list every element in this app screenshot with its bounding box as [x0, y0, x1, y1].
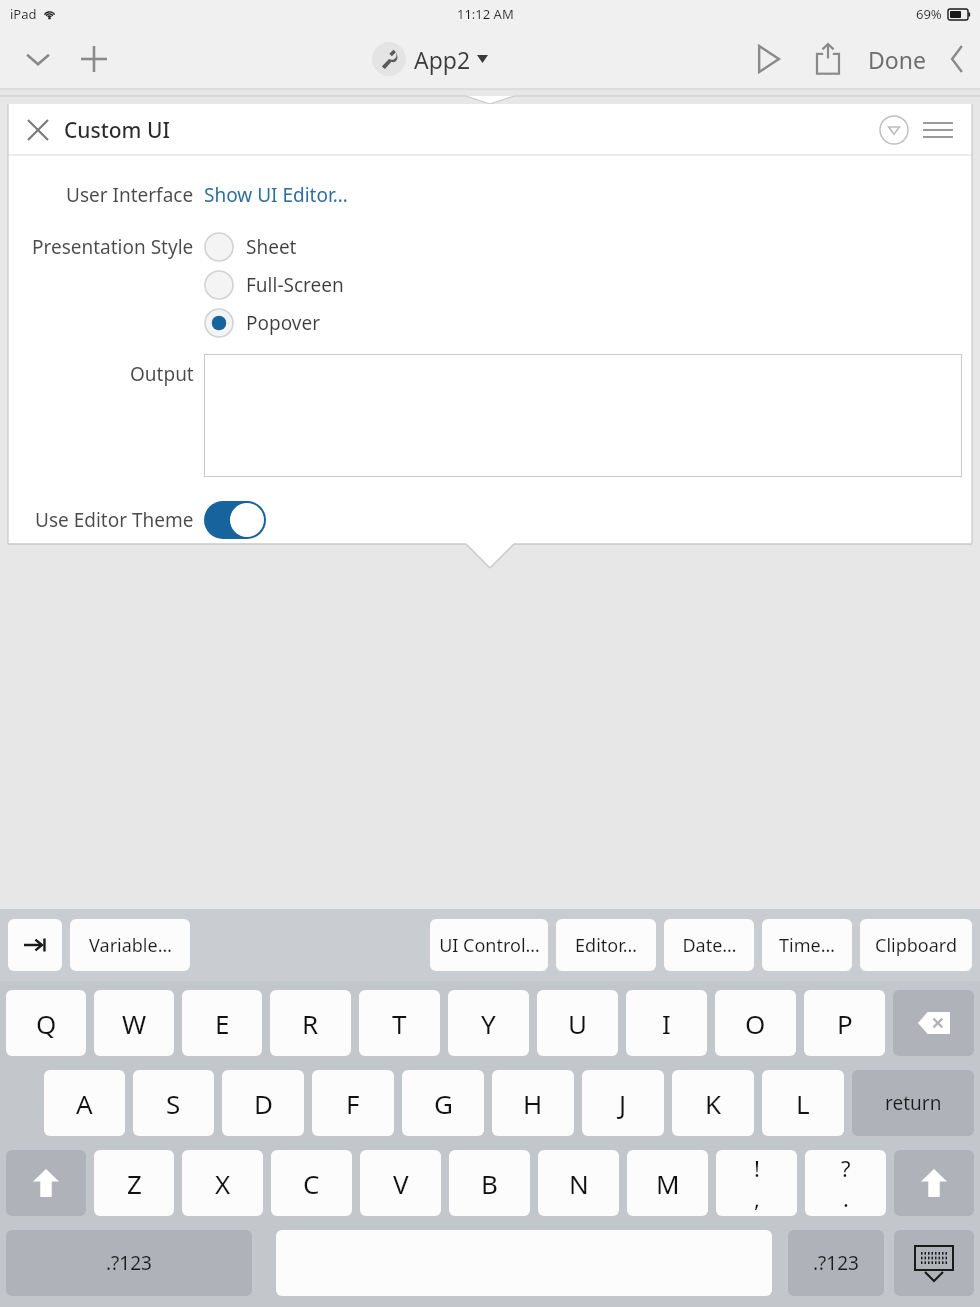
button[interactable]: Shift — [894, 1150, 974, 1216]
staticText: C — [303, 1166, 320, 1201]
staticText: .?123 — [813, 1250, 859, 1276]
staticText: iPad — [10, 5, 37, 23]
button[interactable]: .?123 — [788, 1230, 884, 1296]
button[interactable]: Back — [934, 36, 980, 82]
button[interactable]: U — [537, 990, 618, 1056]
staticText: A — [76, 1086, 93, 1121]
button[interactable]: T — [359, 990, 440, 1056]
button[interactable]: Date… — [664, 919, 754, 971]
staticText: W — [122, 1006, 147, 1041]
button[interactable]: Use Editor Theme toggle — [204, 501, 266, 539]
staticText: M — [656, 1166, 680, 1201]
staticText: K — [705, 1086, 722, 1121]
button[interactable]: Run — [742, 33, 794, 85]
button[interactable]: Popover — [204, 304, 321, 342]
button[interactable]: return — [852, 1070, 974, 1136]
staticText: T — [392, 1006, 407, 1041]
staticText: App2 — [414, 44, 471, 75]
button[interactable]: V — [360, 1150, 441, 1216]
button[interactable]: F — [312, 1070, 394, 1136]
staticText: U — [568, 1006, 588, 1041]
staticText: UI Control… — [439, 933, 540, 958]
staticText: Variable… — [89, 933, 172, 958]
button[interactable]: Add — [70, 35, 118, 83]
staticText: Y — [481, 1006, 496, 1041]
button[interactable]: Editor… — [556, 919, 656, 971]
staticText: Show UI Editor… — [204, 182, 348, 208]
button[interactable]: Menu — [916, 108, 960, 152]
button[interactable]: M — [627, 1150, 708, 1216]
button[interactable]: I — [626, 990, 707, 1056]
staticText: . — [843, 1183, 849, 1213]
staticText: User Interface — [66, 182, 194, 208]
button[interactable]: ? — [805, 1150, 886, 1216]
button[interactable]: P — [804, 990, 885, 1056]
button[interactable]: Done — [860, 34, 934, 85]
button[interactable]: S — [133, 1070, 214, 1136]
staticText: , — [754, 1183, 760, 1213]
staticText: Date… — [682, 933, 737, 958]
button[interactable]: G — [402, 1070, 484, 1136]
staticText: J — [619, 1086, 627, 1121]
staticText: Clipboard — [875, 933, 957, 958]
button[interactable]: E — [182, 990, 262, 1056]
button[interactable]: Options — [872, 108, 916, 152]
button[interactable]: Close — [18, 110, 58, 150]
staticText: I — [662, 1006, 671, 1041]
button[interactable]: C — [271, 1150, 352, 1216]
button[interactable]: App2 — [368, 38, 492, 80]
staticText: Time… — [779, 933, 835, 958]
button[interactable]: Y — [448, 990, 529, 1056]
button[interactable]: UI Control… — [430, 919, 548, 971]
button[interactable]: Collapse — [14, 35, 62, 83]
staticText: V — [393, 1166, 409, 1201]
button[interactable]: N — [538, 1150, 619, 1216]
staticText: Popover — [246, 310, 321, 336]
button[interactable]: H — [492, 1070, 574, 1136]
button[interactable]: Backspace — [893, 990, 974, 1056]
staticText: B — [481, 1166, 498, 1201]
staticText: S — [166, 1086, 181, 1121]
button[interactable]: O — [715, 990, 796, 1056]
button[interactable]: Time… — [762, 919, 852, 971]
button[interactable]: Clipboard — [860, 919, 972, 971]
button[interactable]: Hide keyboard — [894, 1230, 974, 1296]
staticText: 69% — [916, 5, 942, 23]
button[interactable]: ! — [716, 1150, 797, 1216]
button[interactable]: Q — [6, 990, 86, 1056]
button[interactable]: J — [582, 1070, 664, 1136]
button[interactable]: Show UI Editor… — [204, 182, 348, 208]
staticText: Sheet — [246, 234, 297, 260]
staticText: Q — [36, 1006, 57, 1041]
button[interactable]: Sheet — [204, 228, 297, 266]
button[interactable]: Tab — [8, 919, 62, 971]
button[interactable]: .?123 — [6, 1230, 252, 1296]
staticText: L — [796, 1086, 810, 1121]
button[interactable]: K — [672, 1070, 754, 1136]
button[interactable]: B — [449, 1150, 530, 1216]
button[interactable]: X — [182, 1150, 263, 1216]
staticText: .?123 — [106, 1250, 152, 1276]
staticText: P — [837, 1006, 853, 1041]
button[interactable]: Full-Screen — [204, 266, 344, 304]
staticText: D — [254, 1086, 273, 1121]
button[interactable]: A — [44, 1070, 125, 1136]
staticText: 11:12 AM — [457, 5, 514, 23]
staticText: O — [745, 1006, 766, 1041]
staticText: Presentation Style — [32, 234, 194, 260]
button[interactable]: Shift — [6, 1150, 86, 1216]
staticText: Output — [130, 361, 194, 387]
staticText: R — [302, 1006, 319, 1041]
staticText: X — [215, 1166, 231, 1201]
staticText: return — [885, 1090, 942, 1116]
button[interactable]: L — [762, 1070, 844, 1136]
button[interactable]: Z — [94, 1150, 174, 1216]
button[interactable]: Variable… — [70, 919, 190, 971]
button[interactable]: D — [222, 1070, 304, 1136]
button[interactable]: W — [94, 990, 174, 1056]
button[interactable]: R — [270, 990, 351, 1056]
button[interactable]: Share — [802, 33, 854, 85]
staticText: H — [523, 1086, 543, 1121]
button[interactable] — [204, 354, 962, 477]
